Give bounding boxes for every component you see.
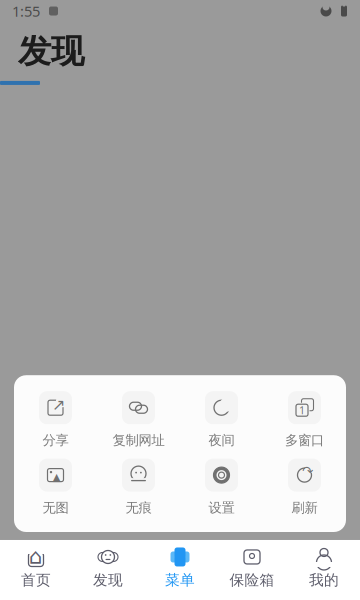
staticText: ↷: [302, 463, 313, 479]
staticText: ▲: [52, 471, 60, 483]
button[interactable]: 菜单: [144, 547, 216, 589]
staticText: 我的: [309, 571, 339, 589]
staticText: 夜间: [208, 432, 234, 449]
staticText: 多窗口: [285, 432, 324, 449]
staticText: 菜单: [165, 571, 195, 589]
staticText: 发现: [93, 571, 123, 589]
staticText: 设置: [208, 500, 234, 516]
staticText: 1:55: [12, 1, 40, 21]
button[interactable]: 发现: [72, 547, 144, 589]
button[interactable]: 我的: [288, 547, 360, 589]
staticText: 无痕: [125, 500, 151, 516]
staticText: 无图: [42, 500, 68, 516]
staticText: 复制网址: [112, 432, 164, 449]
button[interactable]: ↷: [263, 459, 346, 516]
button[interactable]: 1: [263, 391, 346, 449]
button[interactable]: ⌂: [0, 547, 72, 589]
staticText: ↗: [52, 396, 65, 414]
staticText: 刷新: [291, 500, 317, 516]
staticText: 保险箱: [229, 571, 274, 589]
button[interactable]: 保险箱: [216, 547, 288, 589]
button[interactable]: 夜间: [180, 391, 263, 449]
staticText: ⌂: [29, 544, 43, 569]
button[interactable]: ▲: [14, 459, 97, 516]
staticText: 发现: [18, 31, 84, 72]
staticText: 首页: [21, 571, 51, 589]
staticText: 分享: [42, 432, 68, 449]
button[interactable]: 无痕: [97, 459, 180, 516]
staticText: 1: [299, 403, 305, 417]
button[interactable]: 复制网址: [97, 391, 180, 449]
button[interactable]: 设置: [180, 459, 263, 516]
button[interactable]: ↗: [14, 391, 97, 449]
